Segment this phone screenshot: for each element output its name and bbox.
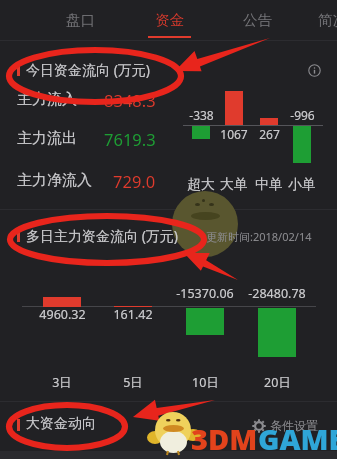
- staticText: 公告: [243, 11, 272, 29]
- staticText: 简况: [318, 11, 337, 29]
- staticText: -15370.06: [176, 285, 234, 302]
- staticText: 多日主力资金流向 (万元): [26, 226, 179, 245]
- staticText: 大资金动向: [26, 415, 96, 433]
- staticText: 7619.3: [104, 128, 156, 150]
- staticText: 3日: [52, 374, 72, 391]
- staticText: -996: [290, 107, 315, 123]
- button[interactable]: 公告: [219, 0, 295, 40]
- button[interactable]: 盘口: [42, 0, 118, 40]
- staticText: 5日: [123, 374, 143, 391]
- staticText: 1067: [220, 126, 248, 142]
- staticText: 161.42: [113, 306, 153, 323]
- staticText: 小单: [288, 176, 316, 194]
- staticText: -28480.78: [248, 285, 306, 302]
- staticText: 4960.32: [39, 306, 86, 323]
- staticText: 盘口: [66, 11, 95, 29]
- button[interactable]: Info: [308, 64, 321, 77]
- staticText: 条件设置: [270, 418, 318, 433]
- staticText: 3DM: [191, 419, 258, 458]
- staticText: 今日资金流向 (万元): [26, 60, 151, 79]
- staticText: 大单: [220, 176, 248, 194]
- staticText: 资金: [155, 11, 184, 29]
- staticText: 中单: [255, 176, 283, 194]
- button[interactable]: 条件设置: [252, 417, 318, 434]
- staticText: 主力净流入: [17, 171, 92, 190]
- staticText: 20日: [264, 374, 291, 391]
- staticText: 更新时间:2018/02/14: [206, 229, 312, 244]
- staticText: 8348.3: [104, 89, 156, 111]
- button[interactable]: 简况: [294, 0, 337, 40]
- button[interactable]: 资金: [131, 0, 207, 40]
- staticText: 729.0: [113, 170, 156, 192]
- staticText: 267: [259, 126, 280, 142]
- staticText: 主力流入: [17, 90, 77, 109]
- staticText: 超大: [187, 176, 215, 194]
- staticText: -338: [189, 107, 214, 123]
- staticText: 10日: [192, 374, 219, 391]
- staticText: GAME: [258, 419, 337, 458]
- staticText: 主力流出: [17, 129, 77, 148]
